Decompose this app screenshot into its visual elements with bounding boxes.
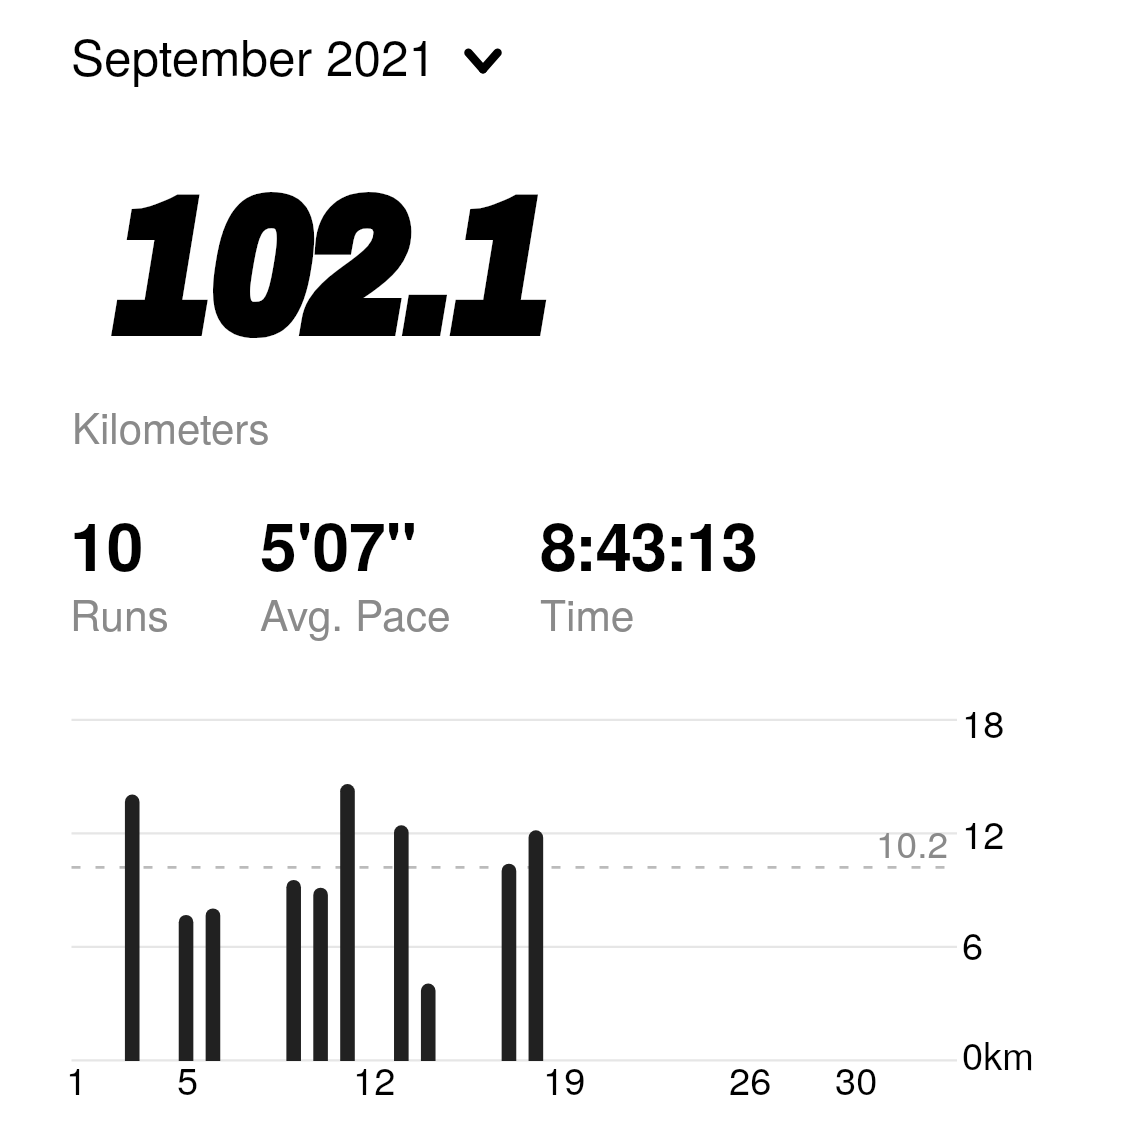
staticText: September 2021: [71, 19, 436, 90]
staticText: 10.2: [876, 816, 949, 869]
staticText: 1: [66, 1051, 88, 1105]
staticText: Avg. Pace: [260, 582, 451, 643]
staticText: Time: [540, 582, 635, 643]
staticText: 12: [962, 805, 1005, 859]
staticText: 5: [177, 1051, 199, 1105]
other: Change month: [461, 30, 505, 80]
staticText: 102.1: [117, 169, 552, 365]
staticText: 10: [70, 497, 144, 592]
button[interactable]: September 2021: [59, 19, 505, 90]
button[interactable]: 8:43:13: [540, 497, 770, 647]
staticText: 12: [353, 1051, 396, 1105]
staticText: 8:43:13: [540, 497, 757, 592]
button[interactable]: 5'07'': [260, 497, 490, 647]
staticText: 102.1: [117, 169, 552, 365]
button[interactable]: 10: [70, 497, 300, 647]
staticText: 26: [729, 1051, 772, 1105]
staticText: Runs: [70, 582, 169, 643]
staticText: Kilometers: [72, 396, 270, 456]
staticText: 30: [835, 1051, 878, 1105]
staticText: 0km: [962, 1026, 1034, 1080]
staticText: 5'07'': [260, 497, 418, 592]
staticText: 19: [543, 1051, 586, 1105]
staticText: 6: [962, 916, 984, 970]
staticText: 18: [962, 694, 1005, 748]
